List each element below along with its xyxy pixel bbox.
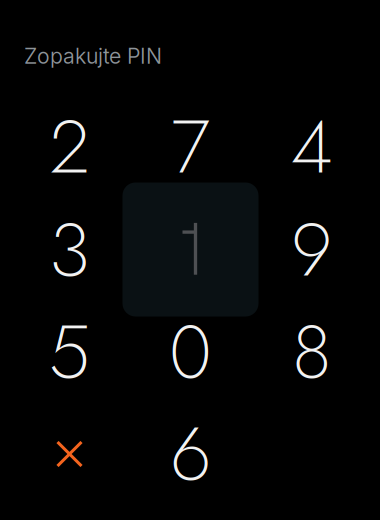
button[interactable]: 4 <box>252 96 370 196</box>
staticText: 5 <box>48 298 90 405</box>
staticText: 9 <box>291 196 332 303</box>
staticText: 6 <box>170 400 211 507</box>
button[interactable]: 7 <box>131 96 249 196</box>
staticText: 7 <box>171 93 210 200</box>
staticText: 0 <box>169 298 212 405</box>
button[interactable]: 9 <box>252 199 370 299</box>
button[interactable]: 5 <box>10 301 128 401</box>
button[interactable]: 2 <box>10 96 128 196</box>
staticText: Zopakujte PIN <box>24 43 162 69</box>
staticText: 3 <box>49 196 90 303</box>
staticText: 2 <box>49 93 89 200</box>
button[interactable]: 1 <box>131 199 249 299</box>
staticText: 4 <box>290 93 332 200</box>
button[interactable]: 8 <box>252 301 370 401</box>
button[interactable]: 6 <box>131 403 249 503</box>
button[interactable]: 3 <box>10 199 128 299</box>
staticText: 8 <box>292 298 331 405</box>
button[interactable]: Delete <box>10 403 128 503</box>
button[interactable]: 0 <box>131 301 249 401</box>
